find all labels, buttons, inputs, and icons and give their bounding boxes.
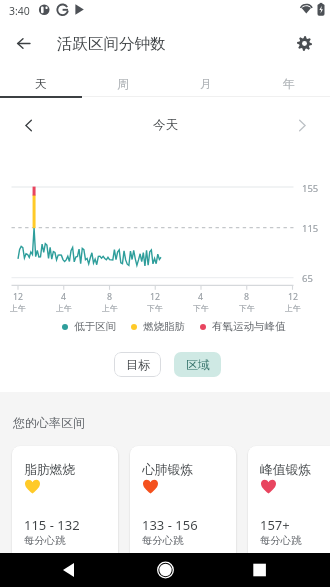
staticText: 133 - 156 xyxy=(142,516,198,534)
staticText: 上午 xyxy=(56,303,72,313)
staticText: 今天 xyxy=(153,117,178,133)
button[interactable]: Previous day xyxy=(12,109,44,141)
button[interactable]: Settings xyxy=(288,27,320,59)
staticText: 每分心跳 xyxy=(24,534,66,547)
staticText: 115 - 132 xyxy=(24,516,80,534)
staticText: 脂肪燃烧 xyxy=(24,462,76,478)
staticText: 上午 xyxy=(285,303,301,313)
staticText: 每分心跳 xyxy=(142,534,184,547)
staticText: 下午 xyxy=(147,303,163,313)
button[interactable]: 目标 xyxy=(114,352,161,377)
button[interactable]: Next day xyxy=(286,109,318,141)
staticText: 月 xyxy=(200,77,212,92)
staticText: 每分心跳 xyxy=(260,534,302,547)
staticText: 年 xyxy=(283,77,295,92)
staticText: 活跃区间分钟数 xyxy=(57,34,166,54)
staticText: 65 xyxy=(302,272,313,285)
staticText: 低于区间 xyxy=(74,320,116,333)
staticText: 区域 xyxy=(186,357,210,372)
button[interactable]: 峰值锻炼 xyxy=(248,446,330,562)
staticText: 12 xyxy=(288,291,299,303)
staticText: 4 xyxy=(198,291,204,303)
button[interactable]: Back xyxy=(7,27,39,59)
button[interactable]: 天 xyxy=(0,64,82,98)
button[interactable]: 年 xyxy=(247,64,330,98)
button[interactable]: 月 xyxy=(164,64,247,98)
staticText: 下午 xyxy=(239,303,255,313)
staticText: 周 xyxy=(117,77,129,92)
staticText: 8 xyxy=(107,291,113,303)
staticText: 12 xyxy=(150,291,161,303)
button[interactable]: 区域 xyxy=(174,352,221,377)
staticText: 您的心率区间 xyxy=(13,415,85,430)
staticText: 目标 xyxy=(126,357,150,372)
staticText: 上午 xyxy=(102,303,118,313)
staticText: 3:40 xyxy=(9,4,30,18)
staticText: 157+ xyxy=(260,516,290,534)
button[interactable]: 周 xyxy=(82,64,164,98)
staticText: 155 xyxy=(302,182,319,195)
staticText: 8 xyxy=(244,291,250,303)
staticText: 下午 xyxy=(193,303,209,313)
staticText: 有氧运动与峰值 xyxy=(212,320,286,333)
staticText: 12 xyxy=(13,291,24,303)
staticText: 4 xyxy=(61,291,67,303)
staticText: 115 xyxy=(302,222,319,235)
staticText: 峰值锻炼 xyxy=(260,462,312,478)
staticText: 燃烧脂肪 xyxy=(143,320,185,333)
button[interactable]: 心肺锻炼 xyxy=(130,446,236,562)
staticText: 上午 xyxy=(10,303,26,313)
staticText: 天 xyxy=(35,77,47,92)
button[interactable]: 脂肪燃烧 xyxy=(12,446,118,562)
staticText: 心肺锻炼 xyxy=(142,462,194,478)
